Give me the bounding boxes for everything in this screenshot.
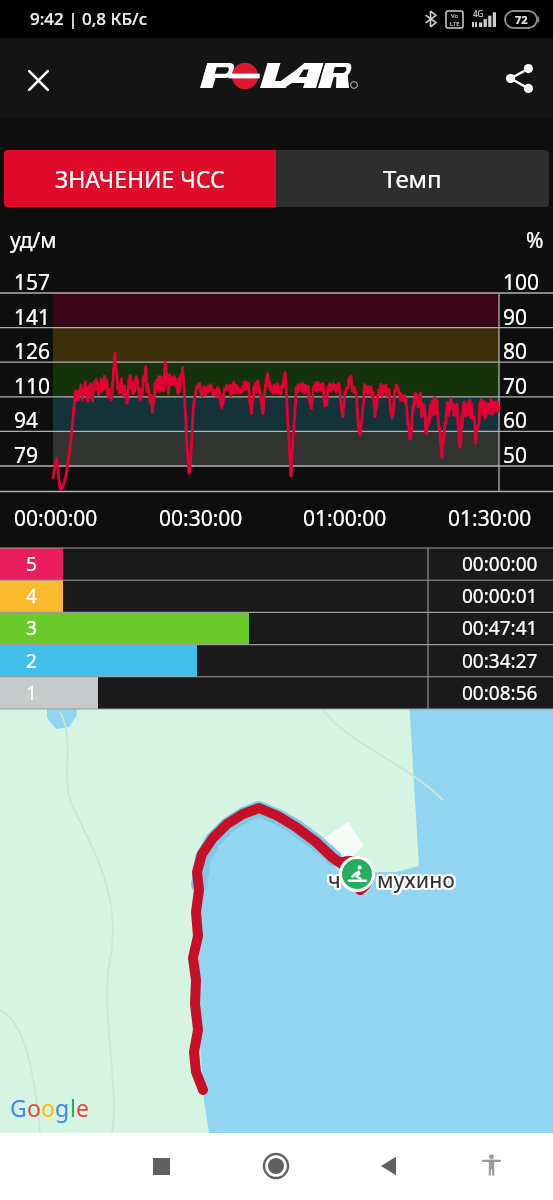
staticText: мухино — [376, 864, 454, 893]
staticText: мухино — [376, 866, 454, 895]
staticText: 9:42 | 0,8 КБ/c — [30, 7, 147, 30]
staticText: 3 — [26, 615, 37, 641]
staticText: 100 — [503, 268, 540, 297]
staticText: ч — [330, 867, 343, 896]
staticText: мухино — [378, 865, 456, 894]
staticText: мухино — [378, 866, 456, 895]
staticText: o — [41, 1092, 55, 1123]
button[interactable]: ЗНАЧЕНИЕ ЧСС — [4, 150, 276, 207]
staticText: LTE — [450, 20, 460, 28]
staticText: 00:47:41 — [462, 615, 538, 641]
staticText: ч — [329, 867, 342, 896]
staticText: мухино — [377, 867, 455, 896]
staticText: мухино — [377, 864, 455, 893]
staticText: уд/м — [10, 226, 57, 255]
staticText: мухино — [375, 866, 453, 895]
staticText: ч — [329, 868, 342, 897]
staticText: ч — [327, 868, 340, 897]
staticText: ч — [328, 866, 341, 895]
staticText: мухино — [377, 866, 455, 895]
staticText: 00:34:27 — [462, 648, 538, 674]
staticText: ч — [329, 864, 342, 893]
staticText: 79 — [14, 441, 39, 470]
staticText: ч — [327, 865, 340, 894]
staticText: 00:08:56 — [462, 680, 538, 706]
staticText: 4G — [473, 8, 484, 19]
staticText: мухино — [375, 867, 453, 896]
staticText: мухино — [375, 865, 453, 894]
staticText: мухино — [378, 868, 456, 897]
staticText: 70 — [503, 372, 528, 401]
staticText: 5 — [26, 551, 37, 577]
staticText: ч — [328, 865, 341, 894]
button[interactable]: Home — [252, 1142, 300, 1190]
staticText: 01:00:00 — [303, 504, 387, 533]
staticText: 72 — [515, 12, 528, 27]
staticText: ч — [328, 864, 341, 893]
button[interactable]: Темп — [276, 150, 549, 207]
staticText: мухино — [376, 867, 454, 896]
staticText: ч — [326, 865, 339, 894]
staticText: 4 — [26, 583, 37, 609]
staticText: мухино — [377, 868, 455, 897]
staticText: 80 — [503, 337, 528, 366]
staticText: l — [70, 1092, 76, 1123]
staticText: мухино — [379, 865, 457, 894]
staticText: g — [55, 1092, 70, 1123]
staticText: ч — [328, 866, 341, 895]
staticText: 00:30:00 — [159, 504, 243, 533]
staticText: 1 — [26, 680, 37, 706]
staticText: ЗНАЧЕНИЕ ЧСС — [55, 163, 225, 194]
staticText: 126 — [14, 337, 51, 366]
staticText: ч — [328, 867, 341, 896]
staticText: ч — [330, 865, 343, 894]
staticText: ч — [329, 866, 342, 895]
staticText: 00:00:00 — [462, 551, 538, 577]
staticText: 01:30:00 — [448, 504, 532, 533]
button[interactable]: Accessibility — [467, 1142, 515, 1190]
staticText: ч — [327, 866, 340, 895]
staticText: 90 — [503, 303, 528, 332]
staticText: 110 — [14, 372, 51, 401]
staticText: ч — [330, 866, 343, 895]
staticText: o — [27, 1092, 41, 1123]
staticText: 60 — [503, 406, 528, 435]
staticText: мухино — [379, 867, 457, 896]
staticText: e — [76, 1092, 89, 1123]
staticText: мухино — [378, 864, 456, 893]
staticText: мухино — [377, 865, 455, 894]
staticText: мухино — [377, 866, 455, 895]
staticText: мухино — [376, 865, 454, 894]
staticText: мухино — [379, 866, 457, 895]
staticText: % — [526, 226, 544, 255]
staticText: мухино — [376, 868, 454, 897]
staticText: ч — [326, 867, 339, 896]
staticText: ч — [326, 866, 339, 895]
staticText: Темп — [383, 162, 442, 195]
button[interactable]: Share — [494, 53, 544, 103]
staticText: ч — [327, 864, 340, 893]
staticText: 94 — [14, 406, 39, 435]
staticText: 50 — [503, 441, 528, 470]
button[interactable]: Close — [13, 55, 63, 105]
staticText: ч — [329, 865, 342, 894]
staticText: 00:00:00 — [14, 504, 98, 533]
staticText: 00:00:01 — [462, 583, 538, 609]
button[interactable]: Recent apps — [137, 1142, 185, 1190]
staticText: 141 — [14, 303, 51, 332]
staticText: 2 — [26, 648, 37, 674]
staticText: 157 — [14, 268, 51, 297]
staticText: G — [10, 1092, 27, 1123]
staticText: ч — [327, 867, 340, 896]
staticText: ч — [328, 868, 341, 897]
staticText: мухино — [378, 867, 456, 896]
button[interactable]: Back — [365, 1142, 413, 1190]
staticText: Vo — [451, 12, 459, 20]
